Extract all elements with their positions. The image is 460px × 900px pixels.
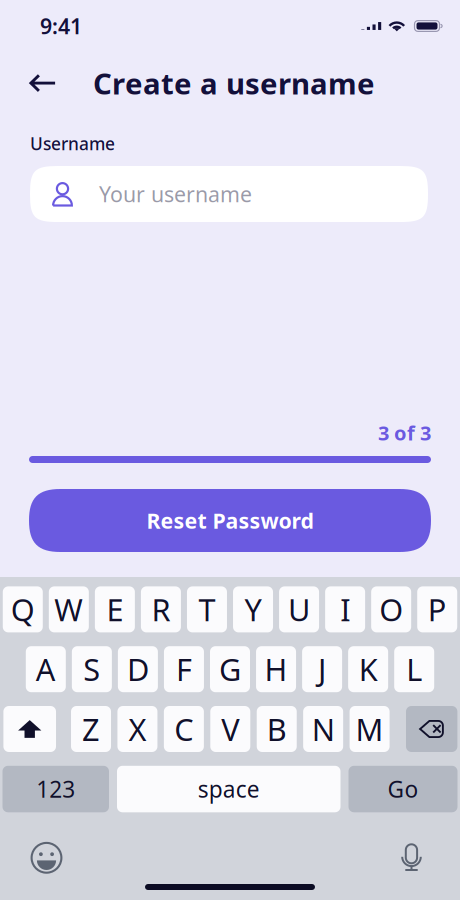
staticText: R: [151, 589, 170, 630]
staticText: L: [406, 649, 422, 689]
button[interactable]: E: [95, 586, 135, 632]
staticText: B: [267, 709, 287, 749]
staticText: J: [318, 649, 326, 689]
staticText: Go: [387, 774, 418, 804]
staticText: X: [128, 709, 146, 749]
button[interactable]: 123: [2, 766, 109, 812]
button[interactable]: Shift: [3, 706, 56, 752]
button[interactable]: S: [72, 646, 112, 692]
button[interactable]: space: [117, 766, 340, 812]
button[interactable]: N: [303, 706, 343, 752]
staticText: G: [219, 649, 241, 689]
button[interactable]: T: [187, 586, 227, 632]
staticText: Create a username: [93, 63, 375, 102]
staticText: Z: [82, 709, 100, 749]
button[interactable]: U: [279, 586, 319, 632]
staticText: space: [198, 774, 260, 804]
staticText: Your username: [99, 180, 252, 208]
staticText: T: [198, 589, 215, 630]
staticText: S: [83, 649, 100, 689]
staticText: C: [174, 709, 193, 749]
staticText: U: [288, 589, 310, 630]
staticText: M: [356, 709, 384, 749]
button[interactable]: J: [302, 646, 342, 692]
button[interactable]: I: [325, 586, 365, 632]
button[interactable]: Emoji: [24, 840, 68, 876]
staticText: Q: [11, 589, 35, 630]
button[interactable]: D: [118, 646, 158, 692]
button[interactable]: L: [394, 646, 434, 692]
button[interactable]: H: [256, 646, 296, 692]
staticText: Username: [30, 132, 115, 155]
staticText: H: [265, 649, 288, 689]
button[interactable]: B: [257, 706, 297, 752]
button[interactable]: Y: [233, 586, 273, 632]
staticText: D: [127, 649, 149, 689]
button[interactable]: Z: [71, 706, 111, 752]
button[interactable]: A: [26, 646, 66, 692]
staticText: K: [359, 649, 378, 689]
button[interactable]: W: [49, 586, 89, 632]
button[interactable]: V: [210, 706, 250, 752]
button[interactable]: O: [371, 586, 411, 632]
staticText: F: [176, 649, 192, 689]
button[interactable]: K: [348, 646, 388, 692]
staticText: W: [54, 589, 83, 630]
staticText: 9:41: [40, 12, 82, 40]
staticText: N: [312, 709, 335, 749]
button[interactable]: Q: [3, 586, 43, 632]
staticText: Y: [244, 589, 261, 630]
button[interactable]: R: [141, 586, 181, 632]
staticText: P: [428, 589, 447, 630]
button[interactable]: Back: [21, 61, 65, 105]
button[interactable]: Go: [348, 766, 457, 812]
button[interactable]: P: [417, 586, 457, 632]
button[interactable]: M: [350, 706, 390, 752]
button[interactable]: C: [164, 706, 204, 752]
staticText: V: [221, 709, 239, 749]
staticText: E: [106, 589, 123, 630]
button[interactable]: G: [210, 646, 250, 692]
staticText: 3 of 3: [378, 419, 431, 446]
button[interactable]: Reset Password: [29, 489, 431, 552]
button[interactable]: Dictation: [389, 840, 433, 876]
staticText: Reset Password: [146, 506, 313, 535]
button[interactable]: X: [117, 706, 157, 752]
staticText: I: [340, 589, 350, 630]
button[interactable]: Delete: [406, 706, 457, 752]
staticText: A: [36, 649, 56, 689]
staticText: O: [379, 589, 403, 630]
staticText: 123: [36, 774, 75, 804]
button[interactable]: F: [164, 646, 204, 692]
